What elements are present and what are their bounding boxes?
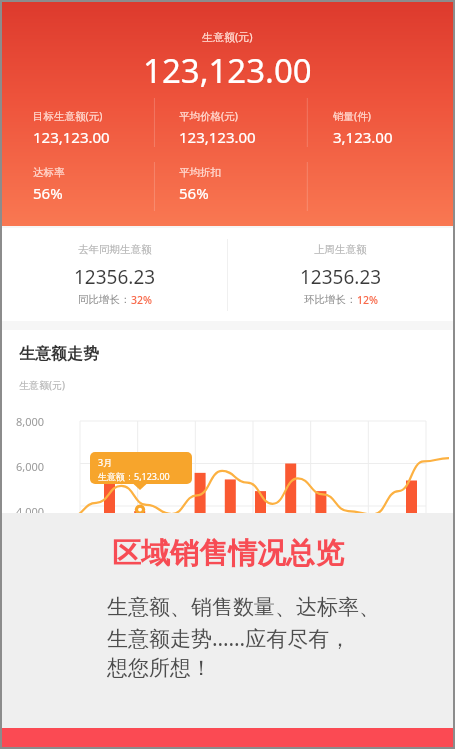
staticText: 56% [179,183,209,203]
staticText: 123,123.00 [33,127,110,147]
staticText: 8,000 [16,414,45,429]
button[interactable]: 上周生意额 [228,243,453,307]
button[interactable]: 去年同期生意额 [2,243,227,307]
staticText: 12% [357,293,378,307]
staticText: 12356.23 [74,264,156,290]
staticText: 生意额、销售数量、达标率、 生意额走势……应有尽有， 想您所想！ [107,594,380,682]
staticText: 环比增长： [304,293,357,306]
staticText: 平均折扣 [179,166,221,179]
staticText: 12356.23 [300,264,382,290]
staticText: 56% [33,183,63,203]
staticText: 去年同期生意额 [78,243,152,256]
staticText: 目标生意额(元) [33,109,103,123]
staticText: 32% [131,293,152,307]
staticText: 生意额走势 [19,344,99,364]
staticText: 销量(件) [333,109,371,123]
staticText: 3,123.00 [333,127,393,147]
staticText: 生意额(元) [19,378,65,392]
staticText: 6,000 [16,459,45,474]
staticText: 生意额(元) [202,29,253,44]
staticText: 123,123.00 [179,127,256,147]
staticText: 区域销售情况总览 [112,535,344,572]
staticText: 3月 [98,456,113,468]
staticText: 达标率 [33,166,65,179]
staticText: 生意额：5,123.00 [98,470,170,482]
staticText: 4,000 [16,504,45,519]
staticText: 平均价格(元) [179,109,238,123]
button[interactable]: 3月 [90,452,192,490]
staticText: 123,123.00 [143,48,312,93]
staticText: 上周生意额 [314,243,367,256]
staticText: 同比增长： [78,293,131,306]
